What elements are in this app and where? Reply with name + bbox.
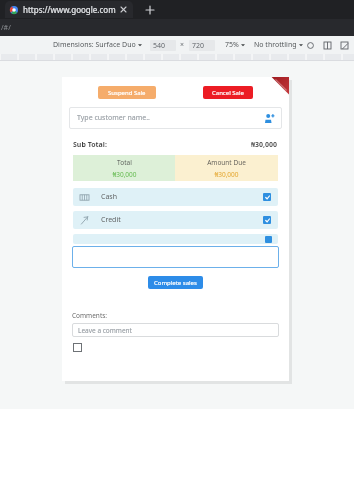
- staticText: /#/: [1, 23, 11, 33]
- staticText: 720: [192, 41, 205, 51]
- button[interactable]: New tab: [143, 3, 156, 16]
- staticText: Suspend Sale: [108, 89, 146, 97]
- staticText: Type customer name..: [77, 113, 150, 123]
- staticText: 75%: [225, 40, 239, 50]
- staticText: Dimensions: Surface Duo: [53, 40, 136, 50]
- staticText: 540: [153, 41, 166, 51]
- staticText: https://www.google.com: [23, 4, 116, 15]
- button[interactable]: Cash selected: [263, 193, 271, 201]
- button[interactable]: [72, 246, 279, 268]
- staticText: Cancel Sale: [212, 89, 244, 97]
- staticText: Amount Due: [207, 158, 246, 167]
- button[interactable]: Credit: [73, 211, 278, 229]
- button[interactable]: 720: [189, 40, 215, 51]
- button[interactable]: Total: [73, 155, 175, 181]
- button[interactable]: Close tab: [119, 5, 128, 14]
- button[interactable]: [73, 234, 278, 244]
- button[interactable]: Leave a comment: [72, 323, 279, 337]
- staticText: Comments:: [72, 311, 108, 320]
- staticText: No throttling: [254, 40, 297, 50]
- staticText: Sub Total:: [73, 140, 107, 150]
- button[interactable]: https://www.google.com: [5, 1, 133, 18]
- button[interactable]: Complete sales: [148, 276, 203, 289]
- staticText: ₦30,000: [214, 170, 239, 179]
- button[interactable]: Dimensions: Surface Duo: [52, 40, 143, 50]
- button[interactable]: Credit selected: [263, 216, 271, 224]
- staticText: Leave a comment: [78, 326, 132, 335]
- button[interactable]: Suspend Sale: [98, 86, 156, 99]
- button[interactable]: 540: [150, 40, 176, 51]
- button[interactable]: Rotate: [304, 39, 316, 51]
- button[interactable]: Print receipt: [73, 343, 82, 352]
- button[interactable]: Cash: [73, 188, 278, 206]
- button[interactable]: 75%: [224, 40, 246, 50]
- staticText: Complete sales: [154, 279, 197, 287]
- staticText: ₦30,000: [112, 170, 137, 179]
- button[interactable]: Add customer: [264, 113, 274, 123]
- button[interactable]: Cancel Sale: [203, 86, 253, 99]
- button[interactable]: More options: [338, 39, 350, 51]
- staticText: Credit: [101, 215, 121, 225]
- button[interactable]: Type customer name..: [69, 107, 282, 129]
- button[interactable]: Amount Due: [175, 155, 278, 181]
- staticText: Total: [117, 158, 132, 167]
- button[interactable]: Dual screen: [321, 39, 333, 51]
- staticText: ×: [180, 40, 185, 50]
- button[interactable]: No throttling: [253, 40, 304, 50]
- staticText: ₦30,000: [251, 140, 278, 150]
- staticText: Cash: [101, 192, 118, 202]
